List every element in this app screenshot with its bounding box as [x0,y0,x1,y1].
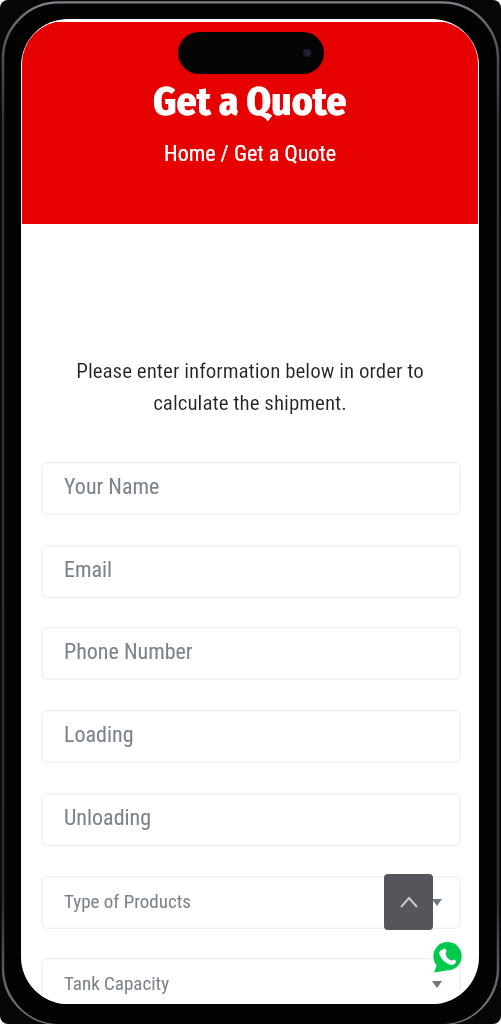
button[interactable]: Your Name [41,462,461,515]
staticText: Type of Products [64,890,192,912]
button[interactable]: Chat on WhatsApp [430,939,465,974]
staticText: Email [64,557,113,583]
button[interactable]: Email [41,545,461,598]
button[interactable]: Type of Products [41,876,461,929]
staticText: Your Name [64,474,160,500]
staticText: Get a Quote [153,78,347,125]
button[interactable]: Tank Capacity [41,958,461,1004]
button[interactable]: Loading [41,710,461,763]
staticText: Please enter information below in order … [50,359,450,415]
button[interactable]: Scroll to top [384,874,433,930]
button[interactable]: Home / [164,141,229,167]
button[interactable]: Phone Number [41,627,461,680]
staticText: Loading [64,722,134,748]
staticText: Get a Quote [234,141,337,167]
staticText: Unloading [64,805,152,831]
button[interactable]: Unloading [41,793,461,846]
staticText: Phone Number [64,639,193,665]
staticText: Tank Capacity [64,972,170,994]
